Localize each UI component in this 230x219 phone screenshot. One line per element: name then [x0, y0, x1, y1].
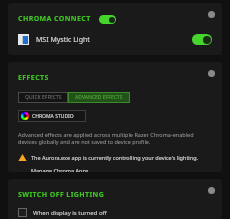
button[interactable]: ADVANCED EFFECTS — [68, 92, 130, 103]
button[interactable]: Toggle on — [192, 34, 212, 45]
staticText: Manage Chroma Apps — [31, 167, 89, 172]
staticText: Advanced effects are applied across mult… — [18, 131, 194, 138]
button[interactable]: Information — [204, 7, 218, 21]
button[interactable]: Information — [204, 66, 218, 80]
button[interactable]: MSI Mystic Light — [18, 34, 212, 45]
staticText: EFFECTS — [18, 73, 49, 83]
staticText: SWITCH OFF LIGHTING — [18, 190, 105, 200]
staticText: The Aurora.exe app is currently controll… — [31, 154, 199, 161]
button[interactable]: CHROMA STUDIO — [18, 110, 86, 122]
staticText: QUICK EFFECTS — [25, 94, 62, 101]
staticText: ADVANCED EFFECTS — [75, 94, 123, 101]
button[interactable]: When display is turned off — [18, 208, 107, 217]
staticText: MSI Mystic Light — [36, 35, 90, 45]
button[interactable]: Toggle on — [99, 15, 116, 24]
staticText: CHROMA STUDIO — [32, 113, 74, 120]
staticText: devices globally and are not saved to de… — [18, 138, 151, 145]
button[interactable]: QUICK EFFECTS — [18, 92, 68, 103]
button[interactable]: Information — [204, 183, 218, 197]
staticText: CHROMA CONNECT — [18, 14, 91, 24]
button[interactable]: Manage Chroma Apps — [31, 167, 89, 172]
staticText: When display is turned off — [33, 209, 107, 217]
